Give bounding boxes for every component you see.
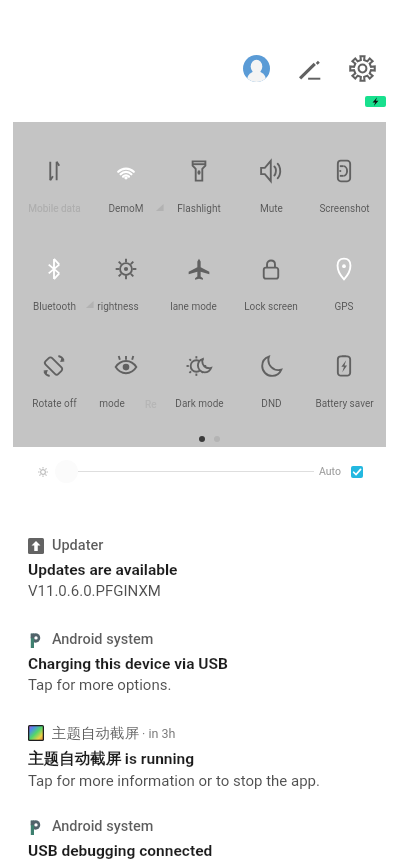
button[interactable] bbox=[308, 343, 380, 405]
button[interactable]: Updater bbox=[28, 537, 378, 600]
staticText: DemoM bbox=[108, 203, 144, 215]
staticText: Re bbox=[145, 399, 157, 411]
staticText: Battery saver bbox=[315, 398, 374, 410]
button[interactable] bbox=[235, 246, 307, 308]
staticText: mode bbox=[99, 398, 125, 410]
button[interactable] bbox=[18, 148, 90, 210]
button[interactable] bbox=[235, 343, 307, 405]
button[interactable] bbox=[18, 343, 90, 405]
button[interactable] bbox=[90, 246, 162, 308]
staticText: Flashlight bbox=[177, 203, 221, 215]
staticText: Screenshot bbox=[319, 203, 370, 215]
staticText: Dark mode bbox=[175, 398, 224, 410]
staticText: Tap for more information or to stop the … bbox=[28, 772, 320, 790]
staticText: Android system bbox=[52, 818, 154, 835]
staticText: Lock screen bbox=[244, 301, 298, 313]
staticText: rightness bbox=[97, 301, 139, 313]
button[interactable]: Settings bbox=[349, 55, 376, 82]
button[interactable] bbox=[308, 246, 380, 308]
staticText: DND bbox=[261, 398, 282, 410]
staticText: Updates are available bbox=[28, 561, 178, 579]
button[interactable] bbox=[308, 148, 380, 210]
button[interactable] bbox=[235, 148, 307, 210]
button[interactable] bbox=[163, 343, 235, 405]
staticText: · in 3h bbox=[139, 726, 176, 741]
button[interactable]: Account bbox=[243, 55, 270, 82]
button[interactable]: Android system bbox=[28, 818, 378, 866]
staticText: 主题自动截屏 is running bbox=[28, 749, 195, 769]
staticText: Charging this device via USB bbox=[28, 655, 228, 673]
staticText: Mobile data bbox=[28, 203, 81, 215]
button[interactable]: Edit bbox=[298, 58, 321, 81]
button[interactable] bbox=[163, 148, 235, 210]
staticText: Auto bbox=[319, 465, 341, 477]
staticText: Tap for more options. bbox=[28, 676, 172, 694]
staticText: Rotate off bbox=[32, 398, 77, 410]
button[interactable] bbox=[90, 148, 162, 210]
staticText: Updater bbox=[52, 537, 104, 554]
staticText: Bluetooth bbox=[33, 301, 76, 313]
button[interactable] bbox=[163, 246, 235, 308]
button[interactable] bbox=[18, 246, 90, 308]
button[interactable]: Auto brightness bbox=[351, 466, 363, 478]
staticText: Android system bbox=[52, 631, 154, 648]
staticText: USB debugging connected bbox=[28, 842, 213, 860]
staticText: 主题自动截屏 bbox=[52, 724, 139, 742]
staticText: GPS bbox=[334, 301, 354, 313]
staticText: V11.0.6.0.PFGINXM bbox=[28, 582, 161, 600]
staticText: lane mode bbox=[170, 301, 217, 313]
button[interactable] bbox=[90, 343, 162, 405]
button[interactable]: 主题自动截屏 bbox=[28, 724, 378, 790]
staticText: Mute bbox=[260, 203, 283, 215]
button[interactable]: Android system bbox=[28, 631, 378, 694]
